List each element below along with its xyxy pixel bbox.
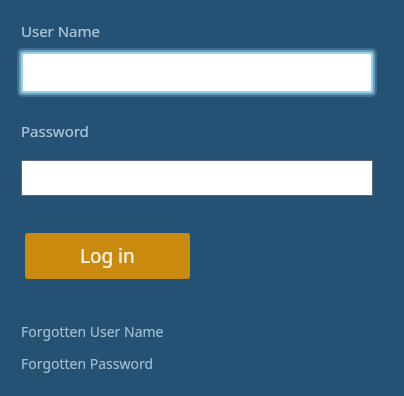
staticText: Password xyxy=(21,121,89,141)
staticText: User Name xyxy=(21,21,101,41)
button[interactable]: Forgotten User Name xyxy=(21,322,164,341)
staticText: Log in xyxy=(80,243,135,269)
staticText: Forgotten User Name xyxy=(21,322,164,341)
button[interactable]: User Name input field xyxy=(17,48,377,97)
button[interactable]: Forgotten Password xyxy=(21,354,154,373)
button[interactable]: Password input field xyxy=(21,160,373,196)
staticText: Forgotten Password xyxy=(21,354,154,373)
button[interactable]: Log in xyxy=(25,233,190,279)
